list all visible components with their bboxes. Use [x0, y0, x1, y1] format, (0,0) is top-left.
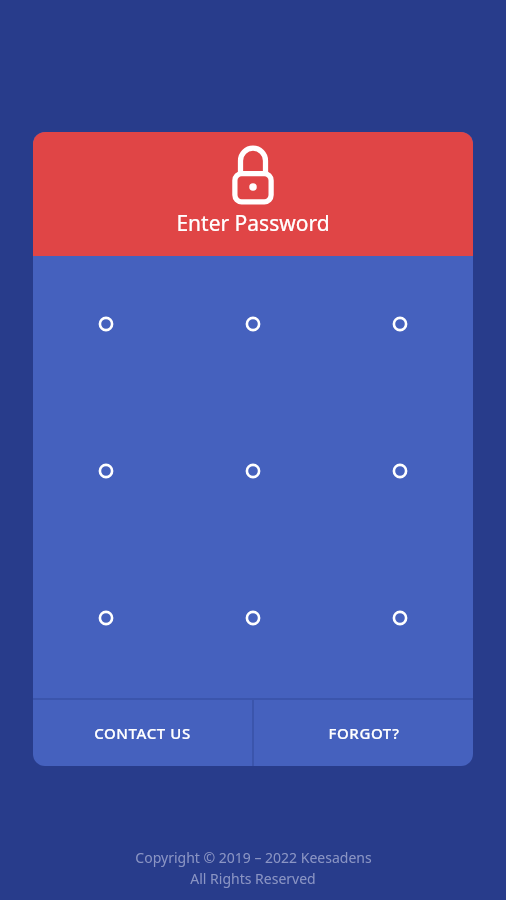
button[interactable]: FORGOT? [254, 700, 473, 766]
staticText: FORGOT? [328, 723, 400, 743]
staticText: CONTACT US [94, 723, 191, 743]
staticText: Copyright © 2019 – 2022 Keesadens [135, 848, 372, 867]
staticText: Enter Password [176, 209, 330, 238]
button[interactable]: CONTACT US [33, 700, 252, 766]
staticText: All Rights Reserved [190, 869, 316, 888]
